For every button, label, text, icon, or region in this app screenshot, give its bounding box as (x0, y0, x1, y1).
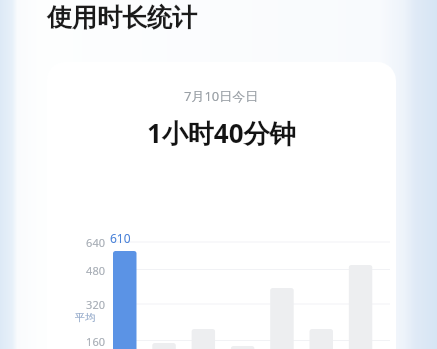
staticText: 160 (55, 334, 105, 349)
staticText: 平均 (75, 311, 95, 324)
staticText: 610 (110, 230, 131, 246)
staticText: 使用时长统计 (47, 2, 197, 33)
staticText: 480 (55, 263, 105, 278)
staticText: 1小时40分钟 (147, 115, 296, 151)
staticText: 640 (55, 235, 105, 250)
staticText: 320 (55, 297, 105, 312)
staticText: 7月10日今日 (184, 87, 259, 105)
button[interactable]: 7月10日今日 (47, 62, 396, 349)
button[interactable]: 使用时长统计 (44, 0, 200, 35)
